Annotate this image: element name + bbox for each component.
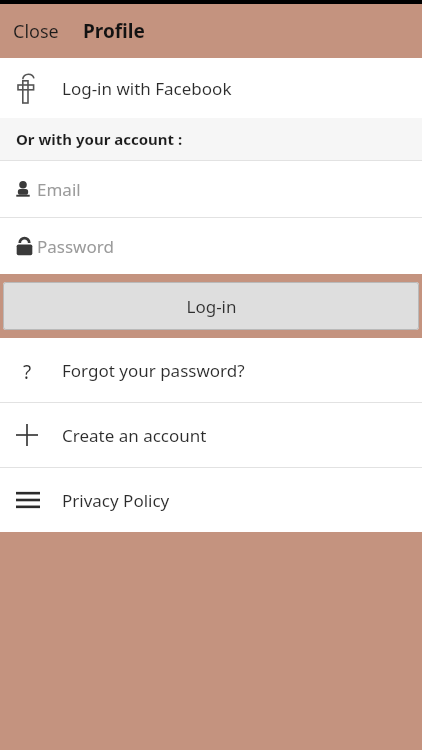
other: Help	[16, 359, 38, 381]
staticText: ?	[23, 359, 32, 381]
button[interactable]: Menu	[0, 468, 422, 532]
button[interactable]: Email	[0, 161, 422, 217]
button[interactable]: Facebook	[0, 58, 422, 118]
button[interactable]: Log-in	[3, 282, 419, 330]
button[interactable]: Help	[0, 338, 422, 402]
staticText: Email	[37, 178, 81, 201]
staticText: Create an account	[62, 424, 207, 447]
staticText: Profile	[83, 18, 145, 44]
staticText: Password	[37, 235, 114, 258]
other: Facebook	[16, 73, 36, 103]
other: Menu	[16, 491, 40, 509]
staticText: Forgot your password?	[62, 359, 245, 382]
staticText: Close	[13, 19, 59, 44]
other: Add	[16, 424, 38, 446]
staticText: Log-in with Facebook	[62, 77, 232, 100]
button[interactable]: Add	[0, 403, 422, 467]
button[interactable]: Password	[0, 218, 422, 274]
staticText: Log-in	[186, 295, 237, 318]
staticText: Or with your account :	[16, 129, 183, 149]
staticText: Privacy Policy	[62, 489, 170, 512]
button[interactable]: Close	[11, 13, 61, 50]
